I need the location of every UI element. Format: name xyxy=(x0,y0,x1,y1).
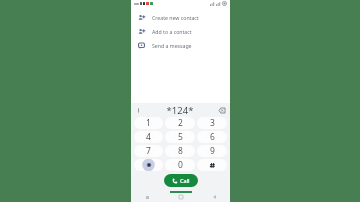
button[interactable]: Backspace xyxy=(218,106,226,114)
button[interactable]: Add to a contact xyxy=(131,24,230,38)
button[interactable]: More options xyxy=(135,107,142,114)
staticText: *124* xyxy=(142,104,218,117)
staticText: 3 xyxy=(210,117,215,129)
button[interactable]: 6 xyxy=(197,131,227,143)
staticText: 9 xyxy=(210,145,215,157)
button[interactable]: 8 xyxy=(165,145,195,157)
button[interactable]: 4 xyxy=(134,131,163,143)
button[interactable]: 1 xyxy=(134,117,163,129)
staticText: Create new contact xyxy=(152,14,199,21)
button[interactable]: 0 xyxy=(165,159,195,171)
staticText: 7 xyxy=(146,145,151,157)
staticText: Add to a contact xyxy=(152,28,192,35)
button[interactable]: 5 xyxy=(165,131,195,143)
button[interactable]: 3 xyxy=(197,117,227,129)
staticText: 0 xyxy=(178,159,183,171)
button[interactable]: Create new contact xyxy=(131,10,230,24)
button[interactable]: 9 xyxy=(197,145,227,157)
button[interactable] xyxy=(134,159,163,171)
button[interactable]: Back xyxy=(210,193,218,201)
staticText: 4 xyxy=(146,131,151,143)
staticText: 8 xyxy=(178,145,183,157)
button[interactable]: 7 xyxy=(134,145,163,157)
staticText: 5 xyxy=(178,131,183,143)
staticText: Send a message xyxy=(152,42,192,49)
button[interactable] xyxy=(197,159,227,171)
button[interactable]: Call xyxy=(164,174,198,187)
button[interactable]: Send a message xyxy=(131,38,230,52)
staticText: 1 xyxy=(146,117,151,129)
staticText: Call xyxy=(180,177,190,184)
staticText: 2 xyxy=(178,117,183,129)
button[interactable]: Recents xyxy=(143,193,151,201)
button[interactable]: Home xyxy=(177,193,185,201)
button[interactable]: 2 xyxy=(165,117,195,129)
staticText: 6 xyxy=(210,131,215,143)
